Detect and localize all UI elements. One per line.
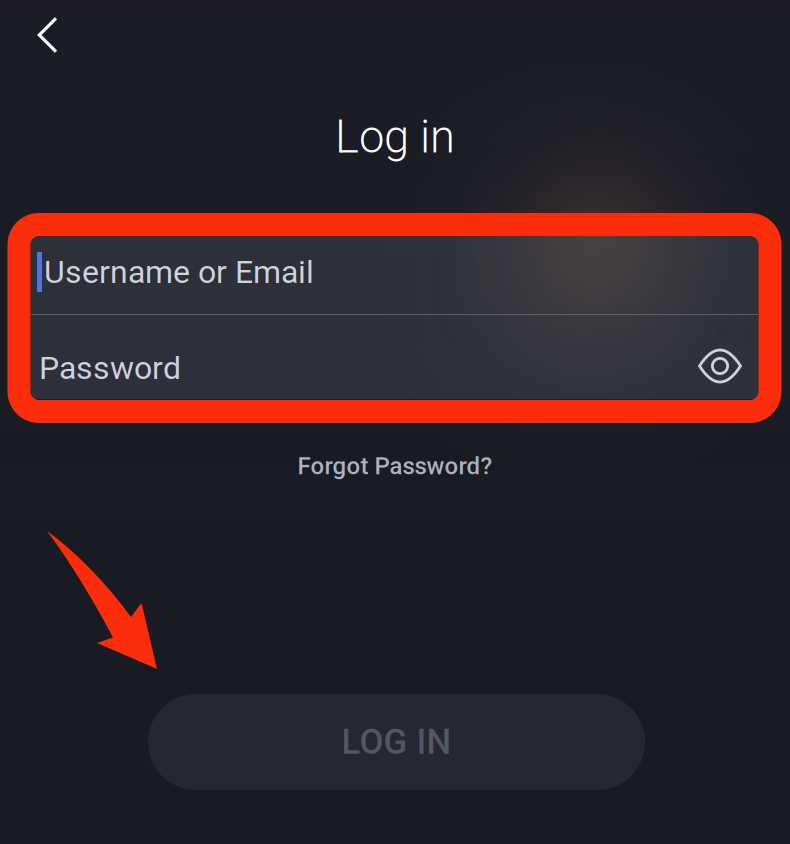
button[interactable]: LOG IN <box>148 694 645 790</box>
staticText: Forgot Password? <box>297 452 492 480</box>
staticText: LOG IN <box>341 722 451 762</box>
staticText: Password <box>39 349 181 387</box>
button[interactable]: Back <box>10 0 86 73</box>
staticText: Log in <box>335 110 455 163</box>
staticText: Username or Email <box>44 253 314 291</box>
button[interactable]: Password <box>31 326 758 410</box>
button[interactable]: Forgot Password? <box>255 445 535 487</box>
button[interactable]: Show password <box>689 336 751 398</box>
button[interactable]: Username or Email <box>31 233 758 311</box>
